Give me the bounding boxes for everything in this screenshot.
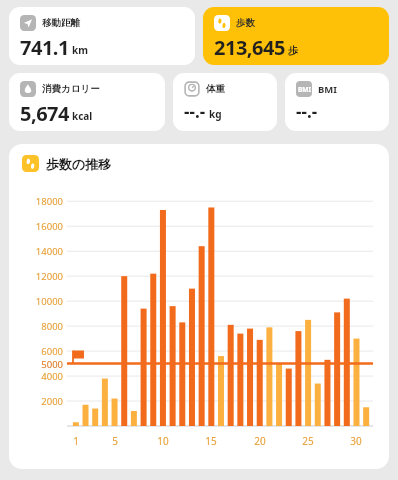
staticText: 5	[101, 434, 129, 448]
staticText: 16000	[11, 220, 63, 233]
button[interactable]: 移動距離	[9, 7, 195, 65]
staticText: 10000	[11, 295, 63, 308]
button[interactable]: BMI	[285, 73, 389, 131]
staticText: 歩	[288, 44, 298, 57]
staticText: 歩数	[236, 17, 255, 29]
staticText: 15	[197, 434, 225, 448]
button[interactable]: 消費カロリー	[9, 73, 165, 131]
button[interactable]: 体重	[173, 73, 277, 131]
staticText: BMI	[298, 85, 311, 94]
staticText: --.-	[184, 100, 206, 123]
staticText: 741.1	[20, 34, 69, 59]
staticText: 5,674	[20, 100, 69, 125]
staticText: 移動距離	[42, 17, 80, 29]
staticText: kg	[209, 107, 222, 121]
staticText: BMI	[318, 83, 337, 96]
staticText: 14000	[11, 245, 63, 258]
staticText: 2000	[11, 395, 63, 408]
staticText: km	[72, 43, 88, 57]
staticText: 213,645	[214, 34, 285, 59]
staticText: 18000	[11, 195, 63, 208]
staticText: 10	[149, 434, 177, 448]
button[interactable]: 歩数の推移	[9, 144, 389, 469]
button[interactable]: 歩数	[203, 7, 389, 65]
staticText: 5000	[11, 358, 63, 371]
staticText: 8000	[11, 320, 63, 333]
staticText: 30	[342, 434, 370, 448]
staticText: 12000	[11, 270, 63, 283]
staticText: 25	[294, 434, 322, 448]
staticText: 1	[62, 434, 90, 448]
staticText: 消費カロリー	[42, 83, 100, 95]
staticText: 4000	[11, 370, 63, 383]
staticText: 6000	[11, 345, 63, 358]
staticText: --.-	[296, 100, 318, 123]
staticText: kcal	[72, 109, 93, 123]
staticText: 歩数の推移	[46, 156, 112, 172]
staticText: 20	[246, 434, 274, 448]
staticText: 体重	[206, 83, 225, 95]
